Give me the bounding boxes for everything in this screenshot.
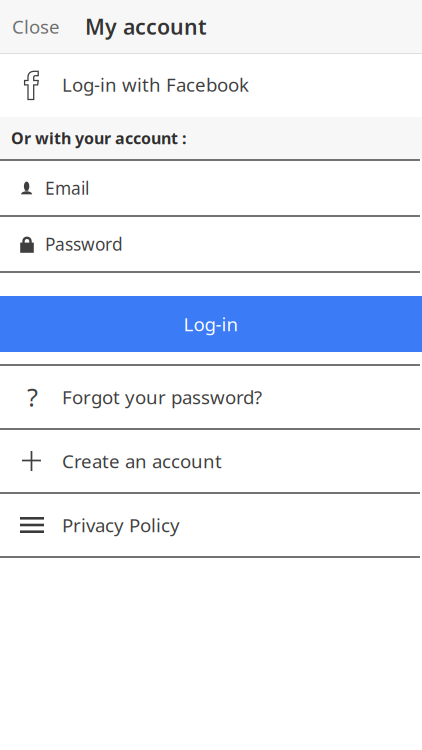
button[interactable]: Log-in <box>0 296 422 352</box>
button[interactable]: Password <box>0 217 422 271</box>
staticText: ? <box>27 380 38 414</box>
staticText: Email <box>45 176 89 199</box>
button[interactable]: ? <box>0 366 422 428</box>
staticText: Create an account <box>62 449 222 473</box>
staticText: Log-in <box>183 312 238 336</box>
staticText: Forgot your password? <box>62 385 262 409</box>
staticText: My account <box>85 12 207 41</box>
staticText: Close <box>12 14 60 39</box>
staticText: Or with your account : <box>11 127 186 149</box>
button[interactable]: Log-in with Facebook <box>0 54 422 117</box>
button[interactable]: Email <box>0 161 422 215</box>
staticText: Privacy Policy <box>62 513 180 537</box>
button[interactable]: Close <box>0 0 76 53</box>
staticText: Log-in with Facebook <box>62 72 249 97</box>
button[interactable]: Create an account <box>0 430 422 492</box>
staticText: Password <box>45 232 123 255</box>
button[interactable]: Privacy Policy <box>0 494 422 556</box>
